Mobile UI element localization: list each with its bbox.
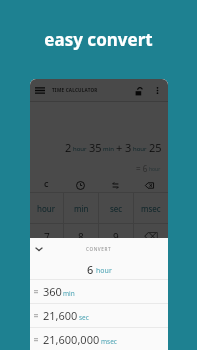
button[interactable]: Collapse xyxy=(32,242,46,256)
staticText: 9 xyxy=(113,230,119,244)
button[interactable]: 21,600,000 xyxy=(30,328,168,350)
button[interactable]: More options xyxy=(152,85,162,95)
staticText: min xyxy=(74,203,89,214)
staticText: easy convert xyxy=(0,28,197,51)
button[interactable]: 9 xyxy=(99,224,133,250)
staticText: 21,600 xyxy=(43,308,78,323)
button[interactable]: Swap units xyxy=(107,177,123,193)
button[interactable]: C xyxy=(38,177,54,193)
button[interactable]: Backspace xyxy=(141,177,157,193)
staticText: hour xyxy=(133,145,147,153)
button[interactable]: 21,600 xyxy=(30,304,168,327)
staticText: ⌫ xyxy=(144,231,159,243)
button[interactable]: Lock xyxy=(133,84,146,97)
staticText: 3 xyxy=(125,140,132,154)
staticText: CONVERT xyxy=(86,246,112,252)
staticText: TIME CALCULATOR xyxy=(52,87,98,93)
staticText: sec xyxy=(79,313,89,322)
button[interactable]: 360 xyxy=(30,280,168,303)
staticText: = 6 xyxy=(136,163,148,173)
button[interactable]: History xyxy=(72,177,88,193)
button[interactable]: hour xyxy=(30,193,63,223)
staticText: hour xyxy=(73,145,87,153)
button[interactable]: 7 xyxy=(30,224,63,250)
button[interactable]: 8 xyxy=(64,224,98,250)
staticText: 21,600,000 xyxy=(43,332,100,347)
staticText: C xyxy=(44,180,49,190)
staticText: min xyxy=(103,145,114,153)
staticText: hour xyxy=(149,166,161,173)
button[interactable]: ⌫ xyxy=(134,224,168,250)
button[interactable]: Menu xyxy=(34,84,47,97)
staticText: 360 xyxy=(43,284,62,299)
staticText: sec xyxy=(110,203,123,214)
staticText: 6 xyxy=(87,262,94,277)
staticText: msec xyxy=(141,203,161,214)
staticText: 35 xyxy=(89,140,102,154)
button[interactable]: msec xyxy=(134,193,168,223)
staticText: + xyxy=(116,140,123,154)
staticText: hour xyxy=(37,203,56,214)
staticText: 2 xyxy=(65,140,72,154)
staticText: 7 xyxy=(44,230,50,244)
staticText: hour xyxy=(96,266,112,276)
button[interactable]: sec xyxy=(99,193,133,223)
button[interactable]: min xyxy=(64,193,98,223)
staticText: msec xyxy=(101,337,117,346)
staticText: min xyxy=(63,289,75,298)
staticText: 25 xyxy=(149,140,162,154)
staticText: 8 xyxy=(78,230,84,244)
